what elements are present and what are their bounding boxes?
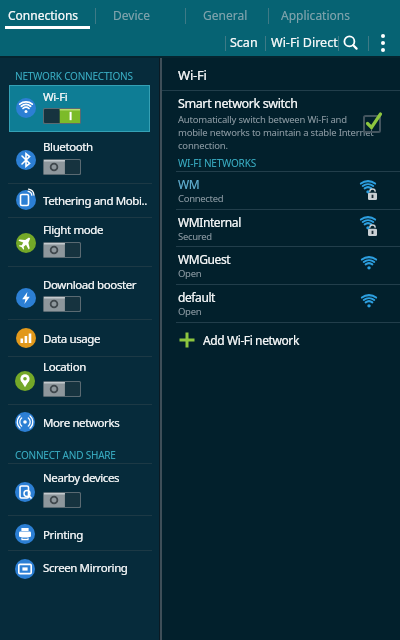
button[interactable]: Download booster bbox=[0, 267, 160, 319]
staticText: Connections bbox=[8, 7, 79, 23]
staticText: Open bbox=[178, 305, 202, 318]
button[interactable]: Flight mode bbox=[0, 218, 160, 266]
staticText: default bbox=[178, 289, 216, 305]
button[interactable]: Location bbox=[0, 357, 160, 404]
staticText: More networks bbox=[43, 415, 120, 431]
staticText: Bluetooth bbox=[43, 139, 93, 155]
button[interactable]: Scan bbox=[228, 32, 266, 54]
staticText: Scan bbox=[230, 34, 258, 51]
button[interactable]: General bbox=[185, 0, 268, 30]
staticText: Secured bbox=[178, 230, 212, 243]
staticText: Flight mode bbox=[43, 222, 104, 238]
button[interactable]: Tethering and Mobi.. bbox=[0, 184, 160, 217]
staticText: Open bbox=[178, 267, 202, 280]
button[interactable]: Device bbox=[95, 0, 185, 30]
button[interactable]: WMGuest bbox=[162, 247, 400, 284]
staticText: Download booster bbox=[43, 277, 137, 293]
button[interactable]: Bluetooth bbox=[0, 132, 160, 183]
staticText: Printing bbox=[43, 527, 83, 543]
button[interactable]: Screen Mirroring bbox=[0, 551, 160, 586]
button[interactable]: Add Wi-Fi network bbox=[162, 323, 400, 360]
staticText: Smart network switch bbox=[178, 95, 298, 112]
button[interactable]: Data usage bbox=[0, 320, 160, 356]
staticText: WMInternal bbox=[178, 214, 241, 230]
staticText: CONNECT AND SHARE bbox=[15, 448, 116, 462]
button[interactable]: WM bbox=[162, 172, 400, 209]
button[interactable]: Wi-Fi bbox=[9, 85, 150, 132]
button[interactable] bbox=[372, 31, 394, 55]
staticText: Wi-Fi Direct bbox=[271, 34, 338, 51]
staticText: Device bbox=[113, 7, 151, 23]
staticText: Tethering and Mobi.. bbox=[43, 193, 147, 209]
staticText: WI-FI NETWORKS bbox=[178, 156, 256, 170]
staticText: Wi-Fi bbox=[43, 89, 68, 105]
button[interactable] bbox=[162, 91, 400, 157]
button[interactable]: Connections bbox=[0, 0, 95, 30]
staticText: Automatically switch between Wi-Fi and m… bbox=[178, 113, 374, 152]
button[interactable]: WMInternal bbox=[162, 210, 400, 246]
staticText: General bbox=[203, 7, 248, 23]
staticText: Data usage bbox=[43, 331, 101, 347]
staticText: WM bbox=[178, 176, 200, 192]
staticText: Applications bbox=[281, 7, 350, 23]
staticText: WMGuest bbox=[178, 251, 231, 267]
button[interactable]: Printing bbox=[0, 516, 160, 550]
staticText: Nearby devices bbox=[43, 470, 120, 486]
staticText: Wi-Fi bbox=[178, 66, 207, 84]
staticText: Screen Mirroring bbox=[43, 560, 128, 576]
button[interactable]: default bbox=[162, 285, 400, 322]
button[interactable]: Wi-Fi Direct bbox=[269, 32, 341, 54]
button[interactable]: Nearby devices bbox=[0, 465, 160, 515]
staticText: Connected bbox=[178, 192, 224, 205]
button[interactable]: Applications bbox=[268, 0, 368, 30]
button[interactable]: More networks bbox=[0, 405, 160, 440]
staticText: Add Wi-Fi network bbox=[203, 332, 299, 348]
staticText: Location bbox=[43, 359, 86, 375]
staticText: NETWORK CONNECTIONS bbox=[15, 69, 133, 83]
button[interactable] bbox=[341, 31, 363, 55]
